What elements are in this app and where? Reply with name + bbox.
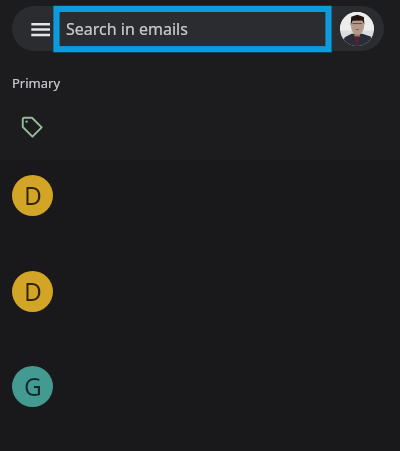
staticText: G [24,370,42,403]
button[interactable]: Conversation [0,159,400,255]
button[interactable]: Open navigation drawer [19,11,55,47]
button[interactable]: Conversation [0,350,400,446]
button[interactable]: Label [21,116,43,138]
staticText: D [24,179,42,212]
staticText: D [24,275,42,308]
button[interactable]: Conversation [0,255,400,351]
button[interactable]: Google Account [340,12,374,46]
staticText: Primary [12,74,61,92]
button[interactable]: Search in emails [55,6,330,51]
staticText: Search in emails [66,18,188,40]
